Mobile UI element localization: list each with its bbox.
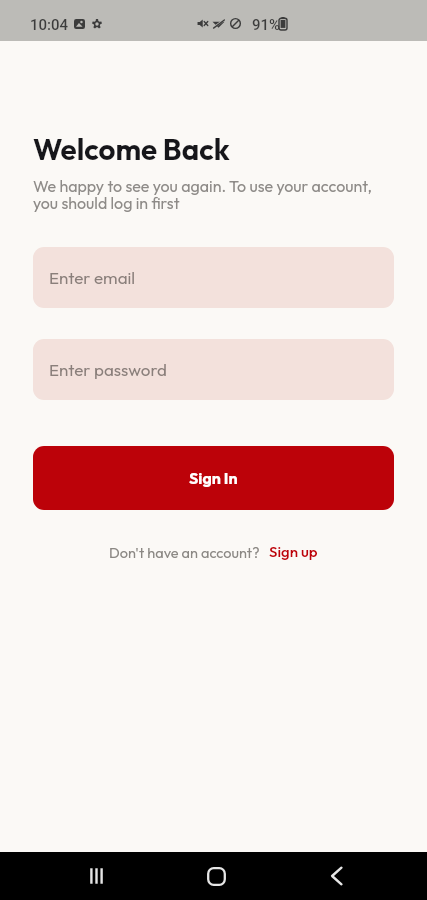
button[interactable]: Enter password bbox=[33, 339, 394, 400]
staticText: Sign In bbox=[189, 468, 238, 488]
button[interactable]: Home bbox=[156, 852, 276, 900]
button[interactable]: Recents bbox=[36, 852, 156, 900]
button[interactable]: Back bbox=[276, 852, 396, 900]
staticText: Welcome Back bbox=[33, 130, 230, 167]
staticText: We happy to see you again. To use your a… bbox=[33, 176, 372, 214]
staticText: Sign up bbox=[269, 542, 318, 561]
staticText: 10:04 bbox=[30, 16, 69, 34]
staticText: Enter email bbox=[49, 267, 136, 288]
staticText: Don't have an account? bbox=[109, 543, 260, 561]
button[interactable]: Enter email bbox=[33, 247, 394, 308]
staticText: Enter password bbox=[49, 359, 167, 380]
staticText: 91% bbox=[252, 16, 281, 34]
button[interactable]: Sign In bbox=[33, 446, 394, 510]
button[interactable]: Sign up bbox=[269, 542, 318, 561]
